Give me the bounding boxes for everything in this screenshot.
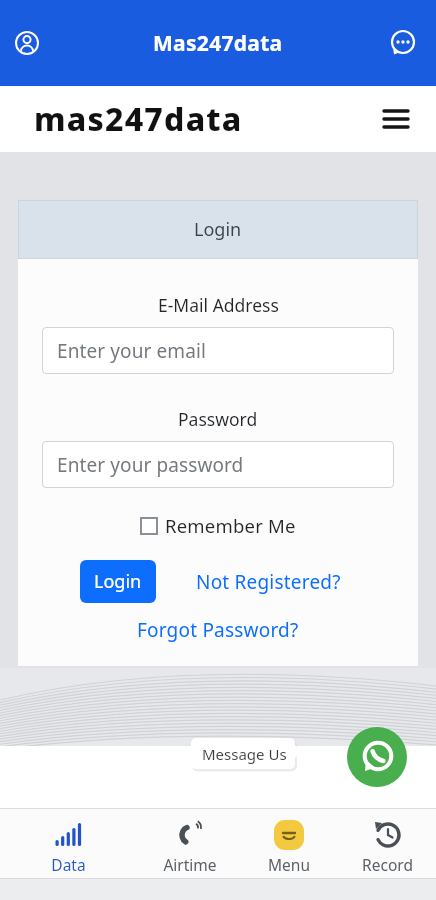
button[interactable]: Remember Me <box>140 513 296 538</box>
staticText: Mas247data <box>153 29 283 58</box>
staticText: mas247data <box>34 97 243 141</box>
staticText: Remember Me <box>165 513 296 538</box>
button[interactable]: Airtime <box>145 818 235 875</box>
staticText: Menu <box>268 854 310 875</box>
button[interactable] <box>390 30 416 56</box>
staticText: Airtime <box>163 854 217 875</box>
button[interactable]: Login <box>80 560 156 603</box>
button[interactable]: Record <box>342 818 432 875</box>
button[interactable] <box>15 31 39 55</box>
button[interactable]: Forgot Password? <box>137 617 299 643</box>
button[interactable]: Enter your password <box>42 441 394 488</box>
staticText: Data <box>51 854 86 875</box>
button[interactable] <box>347 727 407 787</box>
button[interactable]: Menu <box>244 818 334 875</box>
button[interactable]: Data <box>23 818 113 875</box>
staticText: Message Us <box>202 744 287 764</box>
staticText: E-Mail Address <box>158 293 279 317</box>
button[interactable]: Not Registered? <box>196 569 341 595</box>
staticText: Login <box>94 569 142 594</box>
staticText: Login <box>194 217 242 242</box>
staticText: Enter your email <box>57 338 206 364</box>
staticText: Password <box>178 407 258 431</box>
staticText: Record <box>362 854 413 875</box>
staticText: Enter your password <box>57 452 244 478</box>
button[interactable] <box>384 107 408 131</box>
button[interactable]: Enter your email <box>42 327 394 374</box>
